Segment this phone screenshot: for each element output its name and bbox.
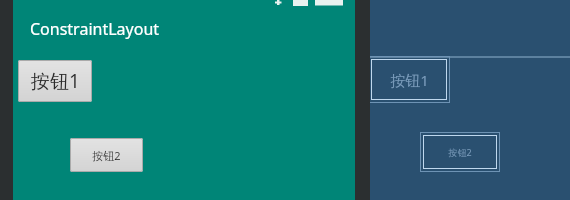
staticText: ConstraintLayout (30, 18, 160, 40)
button[interactable]: 按钮2 (70, 138, 143, 172)
button[interactable]: 按钮2 (423, 135, 497, 169)
staticText: 按钮2 (448, 146, 472, 158)
staticText: 按钮1 (390, 70, 429, 90)
staticText: 按钮2 (92, 148, 121, 163)
staticText: 按钮1 (31, 68, 80, 94)
button[interactable]: 按钮1 (371, 59, 447, 100)
button[interactable]: 按钮1 (18, 60, 92, 102)
